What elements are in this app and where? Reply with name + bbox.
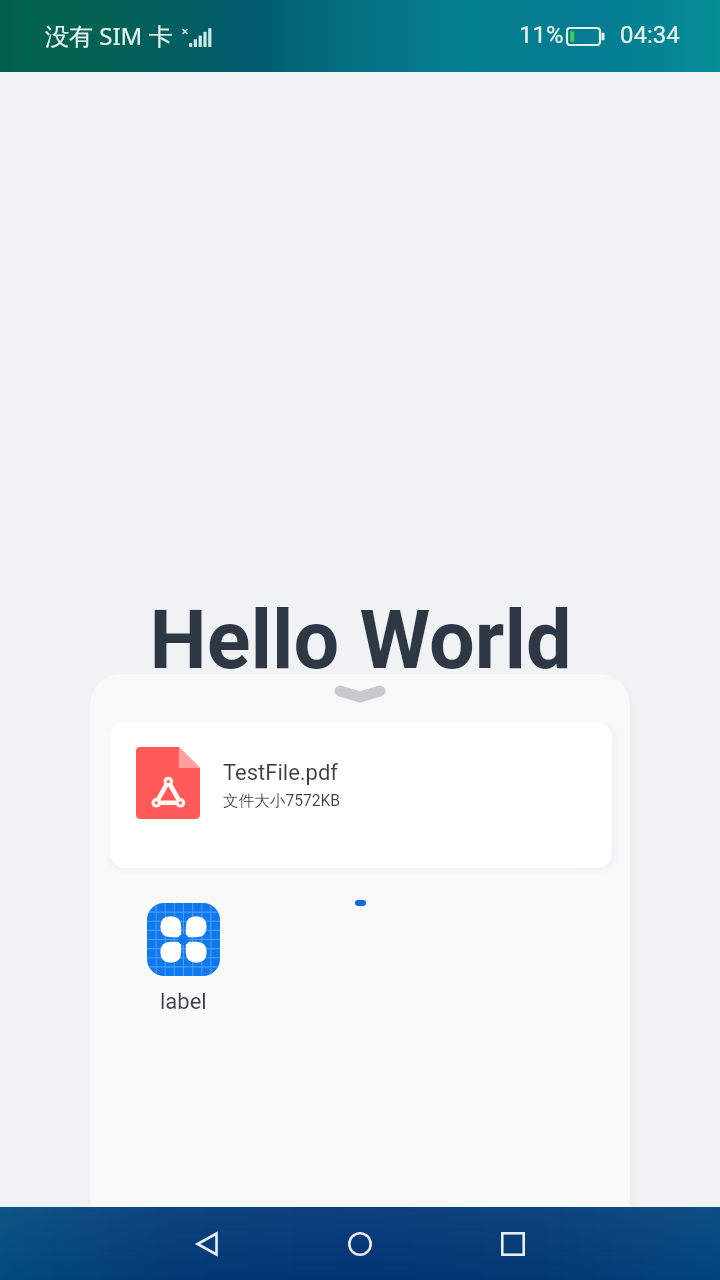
- staticText: 没有 SIM 卡: [45, 19, 173, 52]
- staticText: 04:34: [620, 21, 680, 49]
- button[interactable]: Collapse: [330, 680, 390, 706]
- button[interactable]: Home: [313, 1207, 407, 1280]
- button[interactable]: TestFile.pdf: [110, 722, 612, 868]
- staticText: Hello World: [149, 593, 572, 688]
- staticText: 文件大小7572KB: [223, 791, 340, 811]
- button[interactable]: Recents: [466, 1207, 560, 1280]
- staticText: label: [160, 989, 207, 1015]
- staticText: TestFile.pdf: [223, 760, 339, 786]
- staticText: 11%: [519, 21, 564, 49]
- button[interactable]: Back: [160, 1207, 254, 1280]
- button[interactable]: label: [137, 903, 229, 1015]
